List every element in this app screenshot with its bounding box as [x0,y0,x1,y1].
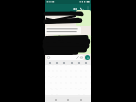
button[interactable]: Keyboard tool [84,61,88,65]
button[interactable]: Keyboard tool [77,61,81,65]
button[interactable]: System navigation [54,98,58,102]
button[interactable]: Keyboard tool [70,61,74,65]
button[interactable]: More options [85,5,91,11]
button[interactable]: System navigation [66,98,70,102]
button[interactable]: Keyboard tool [62,61,66,65]
button[interactable]: System navigation [79,98,83,102]
button[interactable]: Keyboard tool [48,61,52,65]
button[interactable]: Video call [71,5,78,12]
button[interactable] [45,4,71,12]
button[interactable]: Send voice message [85,55,90,60]
button[interactable]: Call [78,5,85,12]
button[interactable]: Keyboard tool [55,61,59,65]
button[interactable] [46,55,84,60]
